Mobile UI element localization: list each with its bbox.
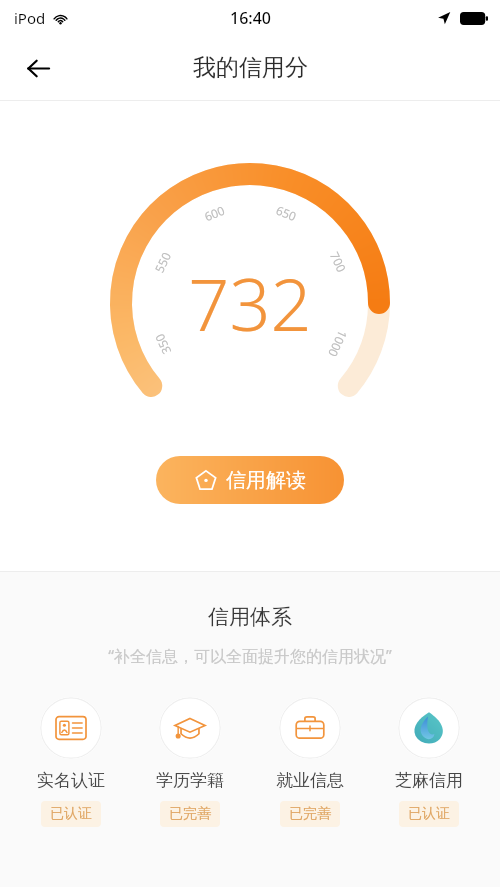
staticText: 1000	[325, 328, 351, 360]
staticText: 650	[274, 202, 299, 224]
staticText: 350	[151, 331, 174, 357]
staticText: 700	[327, 249, 350, 275]
staticText: 信用体系	[0, 604, 500, 630]
staticText: “补全信息，可以全面提升您的信用状况”	[0, 645, 500, 667]
button[interactable]: 芝麻信用	[373, 697, 485, 827]
button[interactable]: 信用解读	[156, 456, 344, 504]
staticText: 16:40	[230, 7, 271, 29]
button[interactable]: 就业信息	[254, 697, 366, 827]
staticText: 信用解读	[226, 468, 306, 493]
button[interactable]: 学历学籍	[134, 697, 246, 827]
staticText: 我的信用分	[193, 53, 308, 82]
staticText: 732	[188, 254, 312, 352]
staticText: 550	[151, 249, 174, 275]
staticText: iPod	[14, 8, 46, 28]
staticText: 芝麻信用	[395, 770, 463, 791]
staticText: 就业信息	[276, 770, 344, 791]
staticText: 已认证	[50, 805, 92, 823]
staticText: 学历学籍	[156, 770, 224, 791]
staticText: 600	[202, 202, 227, 224]
staticText: 已完善	[289, 805, 331, 823]
button[interactable]: Back	[16, 46, 60, 90]
staticText: 实名认证	[37, 770, 105, 791]
staticText: 已完善	[169, 805, 211, 823]
button[interactable]: 实名认证	[15, 697, 127, 827]
staticText: 已认证	[408, 805, 450, 823]
